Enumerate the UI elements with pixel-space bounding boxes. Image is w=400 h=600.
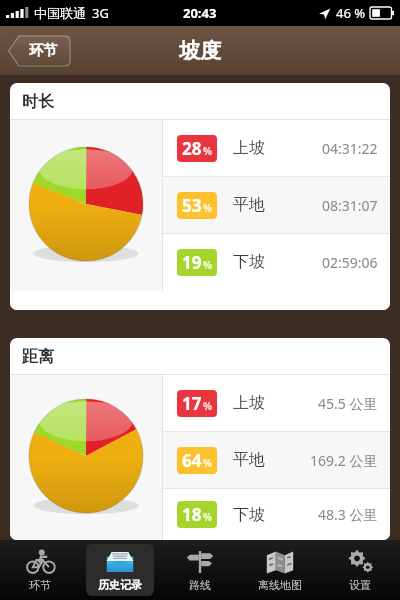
staticText: % [203,144,213,158]
staticText: 环节 [29,578,51,592]
staticText: % [203,399,213,413]
staticText: 46 % [336,4,366,22]
staticText: 平地 [233,195,265,215]
staticText: 下坡 [233,252,265,272]
staticText: 19 [182,251,202,274]
staticText: 53 [182,194,202,217]
button[interactable]: 设置 [320,540,400,600]
staticText: 设置 [349,578,371,592]
button[interactable]: 环节 [8,36,70,66]
staticText: 169.2 公里 [310,451,378,470]
staticText: 45.5 公里 [318,394,378,413]
staticText: 17 [182,392,202,415]
button[interactable]: 历史记录 [80,540,160,600]
staticText: 3G [92,4,109,22]
staticText: 上坡 [233,138,265,158]
staticText: 历史记录 [98,578,142,592]
staticText: 上坡 [233,393,265,413]
staticText: % [203,258,213,272]
staticText: 下坡 [233,505,265,525]
staticText: 48.3 公里 [318,505,378,524]
staticText: 18 [182,503,202,526]
button[interactable]: 19 [163,234,390,290]
staticText: 平地 [233,450,265,470]
staticText: 坡度 [179,38,221,64]
staticText: % [203,456,213,470]
button[interactable]: 17 [163,375,390,431]
button[interactable]: 64 [163,432,390,488]
button[interactable]: 18 [163,489,390,540]
staticText: 04:31:22 [322,139,378,158]
staticText: 路线 [189,578,211,592]
staticText: 时长 [22,92,54,112]
staticText: 08:31:07 [322,196,378,215]
button[interactable]: 离线地图 [240,540,320,600]
button[interactable]: 环节 [0,540,80,600]
staticText: 中国联通 [34,5,86,21]
staticText: 20:43 [183,4,217,22]
button[interactable]: 路线 [160,540,240,600]
staticText: % [203,510,213,524]
staticText: 离线地图 [258,578,302,592]
staticText: 距离 [22,347,54,367]
staticText: 64 [182,449,202,472]
staticText: % [203,201,213,215]
button[interactable]: 28 [163,120,390,176]
button[interactable]: 53 [163,177,390,233]
staticText: 28 [182,137,202,160]
staticText: 环节 [29,42,57,60]
staticText: 02:59:06 [322,253,378,272]
